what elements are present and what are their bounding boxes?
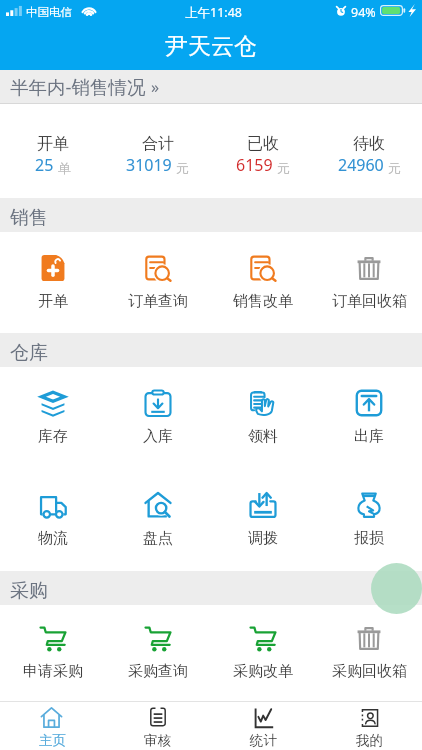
staticText: 调拨 [248,529,278,548]
staticText: 元 [176,160,189,176]
button[interactable]: 快捷操作 [371,563,422,614]
staticText: 待收 [353,134,385,154]
staticText: 统计 [250,732,277,749]
button[interactable]: 物流 [0,469,105,571]
button[interactable]: 开单 [0,232,105,333]
staticText: 订单查询 [128,292,188,311]
staticText: 开单 [38,292,68,311]
staticText: 元 [277,160,290,176]
staticText: 申请采购 [23,662,83,681]
staticText: 采购 [10,579,48,603]
staticText: 中国电信 [26,5,72,19]
button[interactable]: 待收 [316,104,422,198]
button[interactable]: 半年内-销售情况 [0,70,422,103]
staticText: 6159 [236,154,273,176]
button[interactable]: 订单查询 [105,232,210,333]
button[interactable]: 调拨 [210,469,316,571]
staticText: 24960 [338,154,384,176]
staticText: 领料 [248,427,278,446]
button[interactable]: 已收 [210,104,316,198]
button[interactable]: 采购改单 [210,605,316,701]
staticText: 订单回收箱 [332,292,407,311]
staticText: 出库 [354,427,384,446]
staticText: 半年内-销售情况 [10,74,146,99]
staticText: 元 [388,160,401,176]
staticText: 主页 [39,732,66,749]
button[interactable]: 库存 [0,367,105,469]
button[interactable]: 统计 [210,702,316,750]
staticText: 销售 [10,206,48,230]
staticText: 销售改单 [233,292,293,311]
staticText: 单 [58,160,71,176]
staticText: 尹天云仓 [165,32,257,61]
staticText: 采购回收箱 [332,662,407,681]
staticText: 上午11:48 [185,4,242,21]
button[interactable]: 领料 [210,367,316,469]
button[interactable]: 报损 [316,469,422,571]
button[interactable]: 盘点 [105,469,210,571]
staticText: 物流 [38,529,68,548]
staticText: 盘点 [143,529,173,548]
button[interactable]: 采购回收箱 [316,605,422,701]
staticText: 已收 [247,134,279,154]
button[interactable]: 采购查询 [105,605,210,701]
staticText: 采购查询 [128,662,188,681]
staticText: 仓库 [10,341,48,365]
button[interactable]: 合计 [105,104,210,198]
staticText: 25 [35,154,54,176]
staticText: 31019 [126,154,172,176]
button[interactable]: 入库 [105,367,210,469]
staticText: 审核 [144,732,171,749]
button[interactable]: 开单 [0,104,105,198]
button[interactable]: 我的 [316,702,422,750]
staticText: 合计 [142,134,174,154]
button[interactable]: 申请采购 [0,605,105,701]
staticText: 开单 [37,134,69,154]
staticText: 采购改单 [233,662,293,681]
staticText: 报损 [354,529,384,548]
staticText: 入库 [143,427,173,446]
staticText: 94% [351,4,376,21]
button[interactable]: 审核 [105,702,210,750]
staticText: 库存 [38,427,68,446]
button[interactable]: 销售改单 [210,232,316,333]
button[interactable]: 主页 [0,702,105,750]
staticText: 我的 [356,732,383,749]
staticText: » [151,76,160,98]
button[interactable]: 出库 [316,367,422,469]
button[interactable]: 订单回收箱 [316,232,422,333]
